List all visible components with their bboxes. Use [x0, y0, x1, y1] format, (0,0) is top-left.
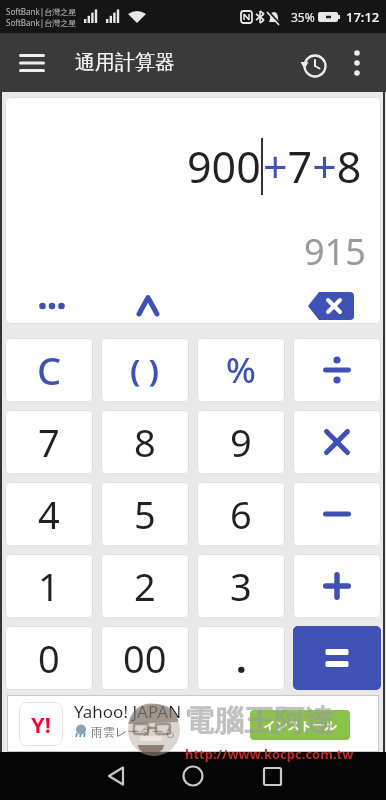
staticText: 電腦王阿達	[184, 702, 334, 740]
staticText: 通用計算器	[75, 50, 175, 75]
staticText: 9	[230, 416, 252, 468]
button[interactable]: 00	[101, 626, 189, 690]
button[interactable]: 2	[101, 554, 189, 618]
button[interactable]: 3	[197, 554, 285, 618]
button[interactable]	[16, 47, 48, 79]
staticText: 8	[134, 416, 156, 468]
button[interactable]: C	[5, 338, 93, 402]
staticText: 915	[304, 227, 366, 276]
staticText: 35%	[291, 9, 315, 25]
staticText: 900	[187, 137, 261, 196]
button[interactable]: 5	[101, 482, 189, 546]
staticText: C	[37, 344, 62, 396]
button[interactable]	[293, 482, 381, 546]
staticText: 3	[230, 560, 252, 612]
button[interactable]	[30, 294, 74, 318]
staticText: +7+8	[263, 137, 362, 196]
staticText: 0	[38, 632, 60, 684]
button[interactable]: 7	[5, 410, 93, 474]
button[interactable]	[131, 291, 165, 321]
staticText: 7	[38, 416, 60, 468]
staticText: .	[236, 632, 247, 684]
staticText: 6	[230, 488, 252, 540]
button[interactable]	[293, 626, 381, 690]
staticText: %	[226, 346, 256, 394]
button[interactable]	[342, 48, 372, 78]
button[interactable]	[293, 338, 381, 402]
button[interactable]: 0	[5, 626, 93, 690]
staticText: SoftBank|台灣之星	[6, 6, 77, 17]
staticText: http://www.kocpc.com.tw	[185, 745, 354, 763]
staticText: 4	[38, 488, 60, 540]
staticText: 5	[134, 488, 156, 540]
staticText: 雨雲レーダーも	[88, 723, 176, 739]
staticText: Yahoo! JAPAN	[74, 700, 182, 723]
button[interactable]	[259, 763, 285, 789]
staticText: 00	[123, 632, 167, 684]
staticText: 1	[38, 560, 60, 612]
button[interactable]: 1	[5, 554, 93, 618]
staticText: 2	[134, 560, 156, 612]
staticText: インストール	[263, 718, 337, 733]
staticText: ( )	[130, 349, 160, 391]
button[interactable]: Y!	[7, 695, 379, 752]
button[interactable]: ( )	[101, 338, 189, 402]
button[interactable]	[293, 554, 381, 618]
button[interactable]: 9	[197, 410, 285, 474]
button[interactable]: 8	[101, 410, 189, 474]
button[interactable]: 4	[5, 482, 93, 546]
button[interactable]: %	[197, 338, 285, 402]
staticText: Y!	[31, 709, 51, 739]
button[interactable]: .	[197, 626, 285, 690]
staticText: SoftBank|台灣之星	[6, 17, 77, 28]
button[interactable]	[293, 410, 381, 474]
button[interactable]	[180, 763, 206, 789]
button[interactable]: 6	[197, 482, 285, 546]
button[interactable]	[306, 290, 356, 322]
staticText: 17:12	[346, 8, 380, 26]
button[interactable]	[297, 49, 331, 83]
button[interactable]	[103, 763, 129, 789]
